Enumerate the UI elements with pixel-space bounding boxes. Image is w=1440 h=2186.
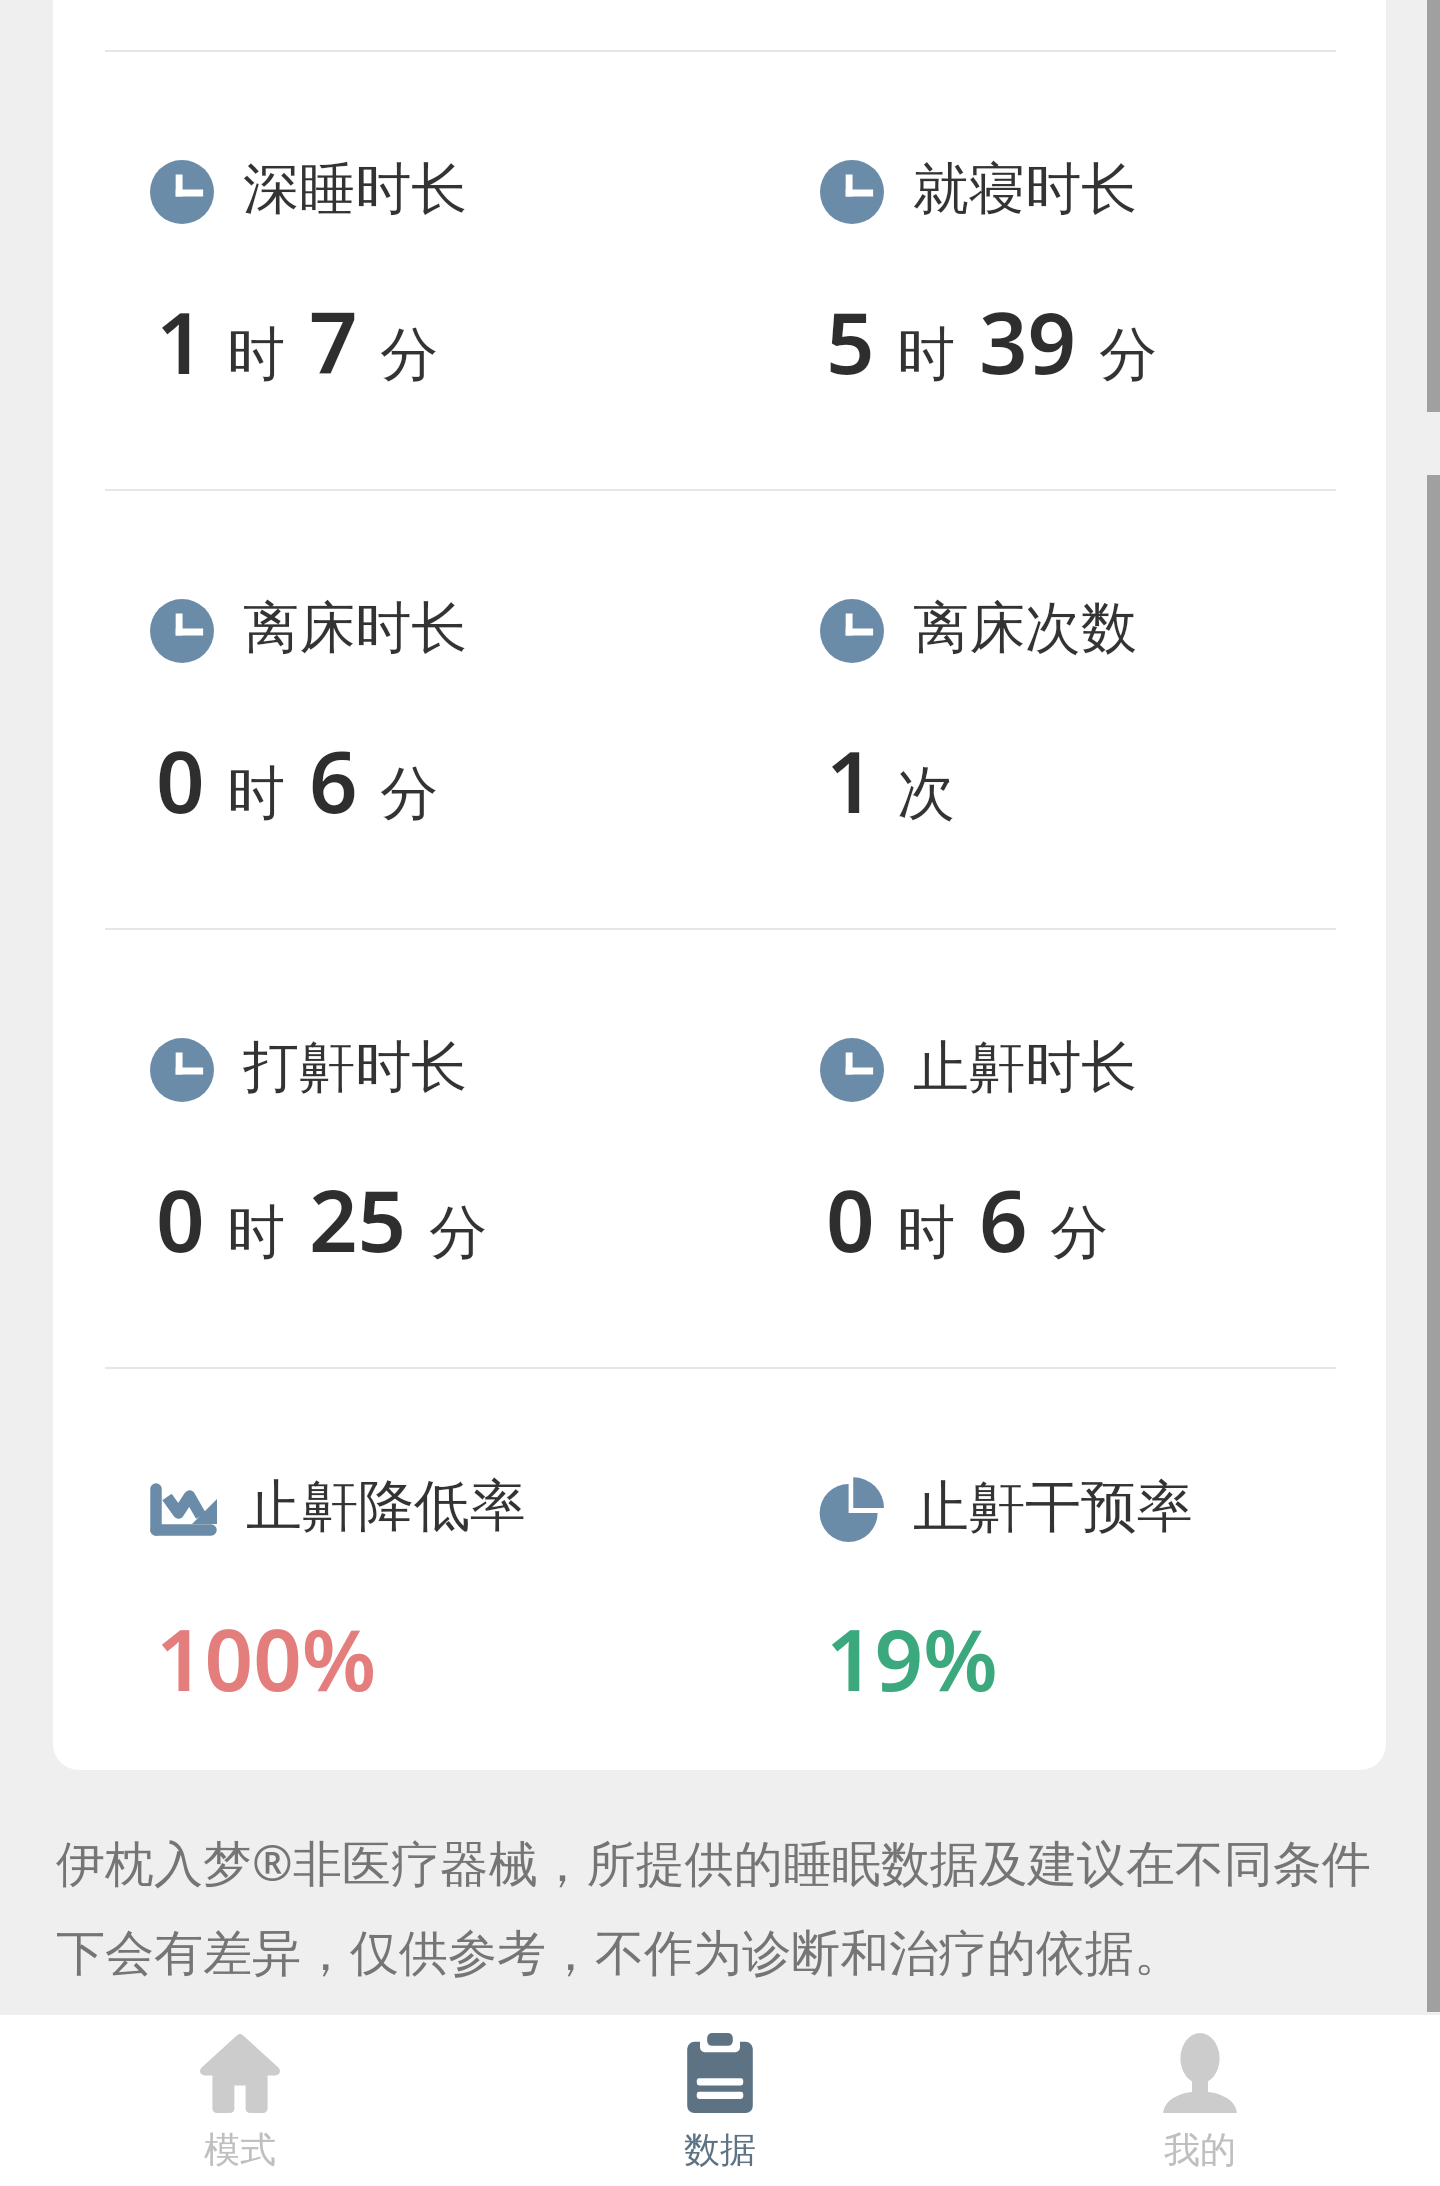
staticText: 止鼾干预率 <box>913 1478 1193 1542</box>
staticText: 39 <box>979 283 1077 399</box>
staticText: 时 <box>897 318 955 391</box>
staticText: 6 <box>309 722 358 838</box>
button[interactable]: 我的 <box>960 2015 1440 2186</box>
staticText: 100% <box>156 1600 377 1716</box>
staticText: 25 <box>309 1161 407 1277</box>
staticText: 分 <box>1050 1196 1108 1269</box>
staticText: 7 <box>309 283 358 399</box>
staticText: 分 <box>429 1196 487 1269</box>
staticText: 5 <box>826 283 875 399</box>
staticText: 离床时长 <box>243 599 467 663</box>
staticText: 时 <box>897 1196 955 1269</box>
staticText: 止鼾时长 <box>913 1038 1137 1102</box>
staticText: 19% <box>826 1600 998 1716</box>
staticText: 时 <box>227 757 285 830</box>
staticText: 6 <box>979 1161 1028 1277</box>
staticText: 就寝时长 <box>913 160 1137 224</box>
staticText: 1 <box>156 283 205 399</box>
staticText: 深睡时长 <box>243 160 467 224</box>
staticText: 分 <box>1099 318 1157 391</box>
staticText: 0 <box>156 1161 205 1277</box>
staticText: 模式 <box>204 2127 276 2172</box>
staticText: 次 <box>897 757 955 830</box>
button[interactable]: 数据 <box>480 2015 960 2186</box>
staticText: 我的 <box>1164 2127 1236 2172</box>
staticText: 数据 <box>684 2127 756 2172</box>
staticText: 伊枕入梦®非医疗器械，所提供的睡眠数据及建议在不同条件下会有差异，仅供参考，不作… <box>56 1829 1384 1984</box>
staticText: 分 <box>380 757 438 830</box>
staticText: 时 <box>227 1196 285 1269</box>
staticText: 0 <box>826 1161 875 1277</box>
staticText: 止鼾降低率 <box>246 1477 526 1541</box>
button[interactable]: 模式 <box>0 2015 480 2186</box>
staticText: 1 <box>826 722 875 838</box>
staticText: 打鼾时长 <box>243 1038 467 1102</box>
staticText: 时 <box>227 318 285 391</box>
staticText: 离床次数 <box>913 599 1137 663</box>
staticText: 分 <box>380 318 438 391</box>
staticText: 0 <box>156 722 205 838</box>
